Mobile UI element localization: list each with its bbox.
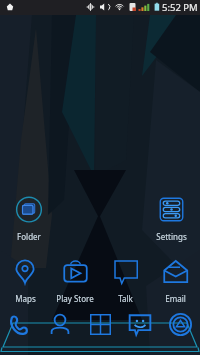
button[interactable]: Browser bbox=[160, 305, 200, 343]
button[interactable]: Folder bbox=[5, 196, 52, 242]
staticText: Play Store bbox=[56, 293, 94, 304]
staticText: Settings bbox=[156, 231, 187, 242]
button[interactable]: All apps bbox=[80, 305, 120, 343]
staticText: Folder bbox=[17, 231, 41, 242]
staticText: Talk bbox=[118, 293, 133, 304]
staticText: 5:52 PM bbox=[162, 1, 198, 14]
button[interactable]: Settings bbox=[147, 196, 195, 242]
staticText: Email bbox=[165, 293, 186, 304]
button[interactable]: Maps bbox=[0, 258, 50, 304]
button[interactable]: Email bbox=[150, 258, 200, 304]
button[interactable]: Play Store bbox=[50, 258, 100, 304]
button[interactable]: Talk bbox=[100, 258, 150, 304]
button[interactable]: Contacts bbox=[40, 305, 80, 343]
button[interactable]: Phone bbox=[0, 305, 40, 343]
button[interactable]: Messaging bbox=[120, 305, 160, 343]
staticText: Maps bbox=[15, 293, 36, 304]
